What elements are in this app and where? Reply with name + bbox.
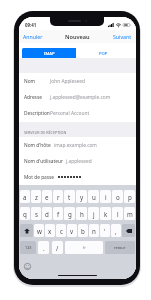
staticText: Personal Account — [50, 110, 90, 117]
button[interactable]: e — [42, 190, 52, 203]
staticText: c — [60, 227, 63, 235]
staticText: k — [104, 210, 108, 218]
button[interactable]: Emoji keyboard — [23, 262, 32, 271]
staticText: w — [37, 227, 42, 235]
staticText: ' — [104, 227, 106, 235]
staticText: John Appleseed — [50, 78, 85, 85]
staticText: Nom — [24, 78, 50, 85]
button[interactable]: s — [31, 207, 41, 220]
staticText: Adresse — [24, 94, 50, 101]
button[interactable]: k — [100, 207, 111, 220]
button[interactable]: p — [124, 190, 135, 203]
staticText: d — [45, 210, 49, 218]
staticText: . — [43, 244, 45, 252]
staticText: imap.example.com — [54, 142, 97, 149]
staticText: POP — [99, 51, 108, 57]
staticText: o — [116, 193, 120, 201]
staticText: v — [70, 227, 74, 235]
button[interactable]: Shift — [20, 224, 33, 237]
staticText: , — [115, 227, 117, 235]
staticText: q — [23, 210, 27, 218]
button[interactable]: Return — [105, 241, 135, 254]
staticText: 123 — [25, 245, 32, 250]
staticText: j.appleseed@example.com — [50, 94, 111, 101]
button[interactable]: o — [112, 190, 123, 203]
button[interactable]: d — [42, 207, 52, 220]
button[interactable]: Adresse — [19, 89, 136, 105]
button[interactable]: Numbers — [20, 241, 36, 254]
button[interactable]: Nom — [19, 73, 136, 89]
button[interactable]: v — [67, 224, 77, 237]
button[interactable]: y — [76, 190, 87, 203]
button[interactable]: c — [56, 224, 66, 237]
staticText: f — [57, 210, 60, 218]
staticText: m — [127, 210, 133, 218]
staticText: Nom d'hôte — [24, 142, 51, 149]
button[interactable]: Suivant — [109, 30, 136, 43]
staticText: y — [80, 193, 84, 201]
staticText: Mot de passe — [24, 174, 55, 181]
button[interactable]: q — [20, 207, 30, 220]
staticText: e — [45, 193, 49, 201]
staticText: t — [68, 193, 71, 201]
staticText: h — [80, 210, 84, 218]
button[interactable]: z — [31, 190, 41, 203]
staticText: n — [92, 227, 96, 235]
staticText: g — [68, 210, 72, 218]
button[interactable]: m — [124, 207, 135, 220]
button[interactable]: ' — [100, 224, 110, 237]
staticText: u — [92, 193, 96, 201]
staticText: Description — [24, 110, 50, 117]
staticText: s — [35, 210, 38, 218]
staticText: a — [23, 193, 27, 201]
staticText: l — [117, 210, 119, 218]
button[interactable]: n — [89, 224, 99, 237]
staticText: Nom d'utilisateur — [24, 158, 63, 165]
button[interactable]: Mot de passe — [19, 169, 136, 185]
button[interactable]: fr — [65, 241, 103, 254]
staticText: i — [105, 193, 107, 201]
button[interactable]: w — [34, 224, 44, 237]
button[interactable]: IMAP — [22, 48, 76, 59]
button[interactable]: Backspace — [122, 224, 135, 237]
button[interactable]: . — [38, 241, 49, 254]
staticText: Nouveau — [65, 33, 90, 41]
button[interactable]: f — [53, 207, 63, 220]
button[interactable]: b — [78, 224, 88, 237]
button[interactable]: g — [64, 207, 75, 220]
button[interactable]: Nom d'utilisateur — [19, 153, 136, 169]
staticText: / — [56, 244, 59, 252]
staticText: j — [93, 210, 95, 218]
button[interactable]: h — [76, 207, 87, 220]
staticText: p — [128, 193, 132, 201]
button[interactable]: j — [88, 207, 99, 220]
button[interactable]: Annuler — [19, 30, 47, 43]
staticText: x — [48, 227, 52, 235]
button[interactable]: r — [53, 190, 63, 203]
button[interactable]: t — [64, 190, 75, 203]
staticText: r — [57, 193, 60, 201]
staticText: z — [35, 193, 38, 201]
staticText: retour — [114, 245, 126, 250]
staticText: Annuler — [23, 33, 43, 40]
button[interactable]: , — [111, 224, 121, 237]
button[interactable]: l — [112, 207, 123, 220]
staticText: b — [81, 227, 85, 235]
button[interactable]: x — [45, 224, 55, 237]
staticText: j.appleseed — [66, 158, 92, 165]
staticText: 09:41 — [25, 22, 37, 28]
button[interactable]: i — [100, 190, 111, 203]
button[interactable]: Nom d'hôte — [19, 137, 136, 153]
button[interactable]: u — [88, 190, 99, 203]
button[interactable]: a — [20, 190, 30, 203]
staticText: fr — [83, 245, 86, 250]
staticText: IMAP — [44, 51, 55, 57]
button[interactable]: / — [52, 241, 63, 254]
button[interactable]: POP — [76, 48, 131, 59]
button[interactable]: Description — [19, 105, 136, 121]
staticText: SERVEUR DE RÉCEPTION — [24, 130, 67, 135]
staticText: Suivant — [113, 33, 132, 40]
